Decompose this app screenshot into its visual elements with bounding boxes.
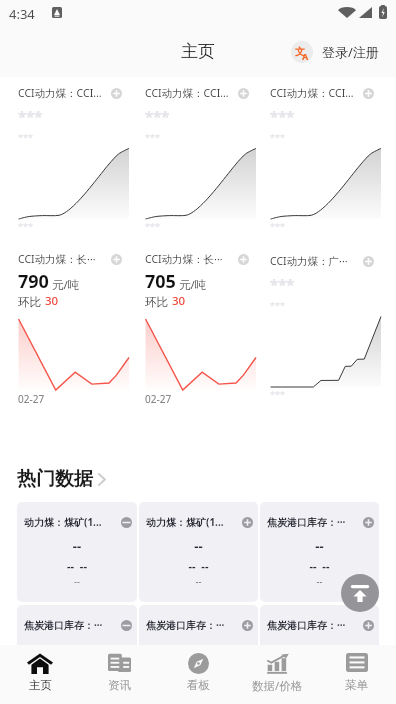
staticText: -- --: [139, 558, 258, 573]
staticText: 文: [295, 45, 305, 58]
staticText: ***: [270, 220, 285, 232]
staticText: 资讯: [108, 678, 131, 692]
button[interactable]: 主页: [0, 645, 80, 704]
staticText: --: [17, 575, 137, 587]
staticText: 动力煤：煤矿(1...: [146, 515, 242, 529]
button[interactable]: 菜单: [317, 645, 396, 704]
button[interactable]: 资讯: [80, 645, 159, 704]
staticText: --: [260, 678, 379, 690]
button[interactable]: Remove: [121, 620, 132, 631]
button[interactable]: 焦炭港口库存：···: [139, 605, 258, 704]
button[interactable]: Add: [111, 88, 122, 99]
button[interactable]: Add: [238, 254, 249, 265]
staticText: 02-27: [145, 392, 172, 406]
staticText: 焦炭港口库存：···: [267, 515, 363, 529]
staticText: --: [139, 537, 258, 555]
staticText: 焦炭港口库存：···: [267, 618, 363, 632]
staticText: ***: [270, 388, 285, 400]
button[interactable]: CCI动力煤：CCI...: [270, 86, 374, 100]
button[interactable]: Add: [242, 517, 253, 528]
button[interactable]: Remove: [121, 517, 132, 528]
staticText: -- --: [260, 661, 379, 676]
staticText: -- --: [17, 558, 137, 573]
staticText: 30: [172, 293, 186, 309]
staticText: ***: [145, 106, 170, 126]
button[interactable]: 焦炭港口库存：···: [260, 605, 379, 704]
button[interactable]: 动力煤：煤矿(1...: [17, 502, 137, 602]
staticText: -- --: [139, 661, 258, 676]
staticText: ***: [270, 274, 295, 294]
staticText: -- --: [17, 661, 137, 676]
staticText: --: [139, 678, 258, 690]
button[interactable]: 动力煤：煤矿(1...: [139, 502, 258, 602]
button[interactable]: 热门数据: [17, 467, 108, 491]
button[interactable]: Add: [363, 88, 374, 99]
button[interactable]: CCI动力煤：广···: [270, 254, 374, 268]
staticText: 环比: [18, 295, 41, 309]
button[interactable]: Add: [238, 88, 249, 99]
staticText: --: [17, 678, 137, 690]
staticText: ***: [145, 131, 160, 143]
staticText: ***: [270, 106, 295, 126]
button[interactable]: Add: [242, 620, 253, 631]
staticText: ***: [18, 131, 33, 143]
staticText: 30: [45, 293, 59, 309]
button[interactable]: CCI动力煤：CCI...: [145, 86, 249, 100]
button[interactable]: Add: [363, 517, 374, 528]
staticText: ***: [270, 299, 285, 311]
staticText: --: [139, 640, 258, 658]
staticText: 热门数据: [17, 467, 93, 491]
staticText: CCI动力煤：长···: [18, 252, 111, 266]
staticText: ***: [18, 106, 43, 126]
staticText: --: [260, 537, 379, 555]
button[interactable]: CCI动力煤：长···: [18, 252, 122, 266]
button[interactable]: 焦炭港口库存：···: [260, 502, 379, 602]
button[interactable]: Add: [363, 620, 374, 631]
staticText: -- --: [260, 558, 379, 573]
staticText: CCI动力煤：CCI...: [145, 86, 238, 100]
staticText: ***: [270, 131, 285, 143]
staticText: 环比: [145, 295, 168, 309]
button[interactable]: 文: [291, 41, 379, 63]
button[interactable]: CCI动力煤：CCI...: [18, 86, 122, 100]
staticText: --: [17, 640, 137, 658]
button[interactable]: 数据/价格: [238, 645, 317, 704]
staticText: ***: [18, 220, 33, 232]
staticText: 数据/价格: [252, 678, 303, 694]
staticText: CCI动力煤：CCI...: [18, 86, 111, 100]
staticText: --: [139, 575, 258, 587]
button[interactable]: 看板: [159, 645, 238, 704]
staticText: ***: [145, 220, 160, 232]
button[interactable]: 焦炭港口库存：···: [17, 605, 137, 704]
button[interactable]: CCI动力煤：长···: [145, 252, 249, 266]
staticText: 主页: [181, 41, 215, 62]
staticText: 790: [18, 269, 49, 294]
button[interactable]: Back to top: [341, 574, 379, 612]
staticText: 动力煤：煤矿(1...: [24, 515, 121, 529]
staticText: --: [17, 537, 137, 555]
staticText: CCI动力煤：长···: [145, 252, 238, 266]
staticText: CCI动力煤：CCI...: [270, 86, 363, 100]
staticText: 焦炭港口库存：···: [146, 618, 242, 632]
staticText: 元/吨: [52, 277, 80, 293]
staticText: 焦炭港口库存：···: [24, 618, 121, 632]
staticText: 看板: [187, 678, 210, 692]
staticText: 4:34: [9, 5, 35, 23]
staticText: 元/吨: [179, 277, 207, 293]
button[interactable]: Add: [363, 256, 374, 267]
staticText: 02-27: [18, 392, 45, 406]
staticText: A: [302, 50, 309, 62]
staticText: --: [260, 640, 379, 658]
staticText: 主页: [29, 678, 52, 692]
staticText: 登录/注册: [322, 43, 379, 61]
staticText: 菜单: [345, 678, 368, 692]
button[interactable]: Add: [111, 254, 122, 265]
staticText: CCI动力煤：广···: [270, 254, 363, 268]
staticText: --: [260, 575, 379, 587]
staticText: 705: [145, 269, 176, 294]
